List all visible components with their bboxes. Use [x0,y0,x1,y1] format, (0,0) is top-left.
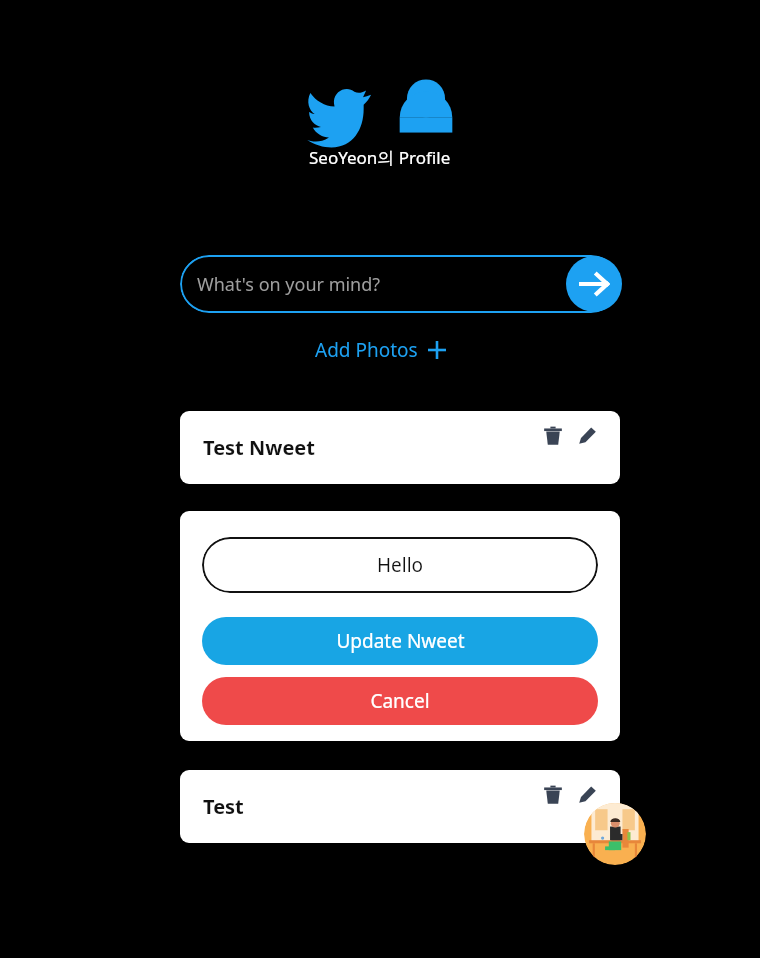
button[interactable]: What's on your mind? [180,255,620,313]
staticText: Cancel [370,688,430,714]
other: Twitter [306,78,368,140]
staticText: Hello [377,552,424,578]
staticText: SeoYeon의 Profile [309,146,451,169]
button[interactable]: Update Nweet [202,617,598,665]
staticText: Test [203,793,244,820]
button[interactable]: Cancel [202,677,598,725]
button[interactable]: Hello [202,537,598,593]
button[interactable]: Test [180,770,620,843]
button[interactable]: Delete [540,782,566,808]
button[interactable]: Test Nweet [180,411,620,484]
button[interactable]: Delete [540,423,566,449]
staticText: Update Nweet [336,628,465,654]
button[interactable]: Edit [574,782,600,808]
staticText: Add Photos [315,337,418,363]
button[interactable]: Submit [566,256,622,312]
other: Profile [398,78,454,140]
button[interactable]: Edit [574,423,600,449]
button[interactable]: Add Photos [315,337,446,363]
staticText: Test Nweet [203,434,315,461]
button[interactable]: User avatar [584,803,646,865]
staticText: What's on your mind? [197,272,381,297]
